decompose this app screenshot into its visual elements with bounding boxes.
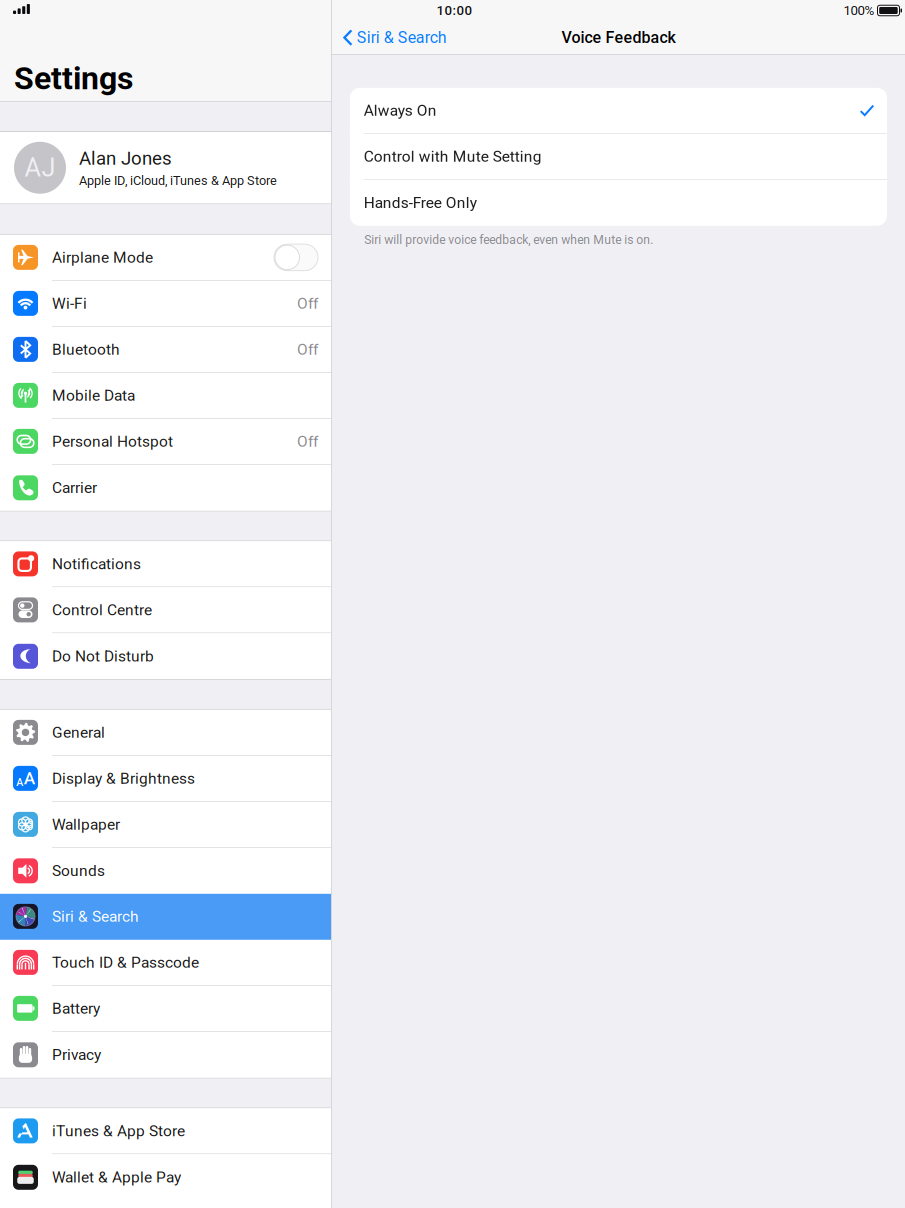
- staticText: Notifications: [52, 555, 141, 573]
- staticText: Apple ID, iCloud, iTunes & App Store: [79, 173, 277, 188]
- button[interactable]: Control Centre: [0, 587, 331, 633]
- staticText: Touch ID & Passcode: [52, 953, 199, 971]
- staticText: Control Centre: [52, 601, 152, 619]
- staticText: 10:00: [436, 3, 472, 18]
- staticText: Wi-Fi: [52, 294, 87, 312]
- staticText: Sounds: [52, 862, 105, 880]
- staticText: Voice Feedback: [561, 28, 675, 47]
- staticText: Off: [297, 340, 318, 358]
- staticText: Carrier: [52, 479, 97, 497]
- staticText: Always On: [364, 101, 437, 119]
- button[interactable]: Hands-Free Only: [350, 180, 887, 226]
- button[interactable]: Carrier: [0, 465, 331, 511]
- staticText: Personal Hotspot: [52, 432, 173, 450]
- button[interactable]: Bluetooth: [0, 327, 331, 373]
- button[interactable]: Mobile Data: [0, 373, 331, 419]
- staticText: Mobile Data: [52, 386, 135, 404]
- button[interactable]: Wallet & Apple Pay: [0, 1154, 331, 1200]
- staticText: iTunes & App Store: [52, 1122, 185, 1140]
- staticText: AJ: [24, 153, 55, 183]
- button[interactable]: Privacy: [0, 1032, 331, 1078]
- staticText: Privacy: [52, 1046, 101, 1064]
- button[interactable]: Always On: [350, 88, 887, 134]
- button[interactable]: Sounds: [0, 848, 331, 894]
- staticText: Bluetooth: [52, 340, 120, 358]
- button[interactable]: iTunes & App Store: [0, 1108, 331, 1154]
- staticText: General: [52, 723, 105, 741]
- staticText: Off: [297, 294, 318, 312]
- staticText: Siri & Search: [357, 28, 447, 47]
- button[interactable]: Do Not Disturb: [0, 633, 331, 679]
- staticText: Battery: [52, 999, 100, 1017]
- button[interactable]: Airplane Mode: [0, 235, 331, 281]
- staticText: Control with Mute Setting: [364, 147, 542, 165]
- staticText: Airplane Mode: [52, 248, 153, 266]
- staticText: Settings: [14, 59, 133, 97]
- button[interactable]: Wi-Fi: [0, 281, 331, 327]
- staticText: Hands-Free Only: [364, 194, 477, 212]
- button[interactable]: Personal Hotspot: [0, 419, 331, 465]
- button[interactable]: Siri & Search: [0, 894, 331, 940]
- staticText: Siri & Search: [52, 907, 139, 925]
- button[interactable]: Battery: [0, 986, 331, 1032]
- staticText: Alan Jones: [79, 147, 172, 169]
- staticText: Display & Brightness: [52, 769, 195, 787]
- staticText: Do Not Disturb: [52, 647, 154, 665]
- staticText: A: [24, 768, 35, 788]
- button[interactable]: Control with Mute Setting: [350, 134, 887, 180]
- button[interactable]: A: [0, 756, 331, 802]
- button[interactable]: AJ: [0, 132, 331, 203]
- button[interactable]: Wallpaper: [0, 802, 331, 848]
- button[interactable]: General: [0, 710, 331, 756]
- staticText: Wallet & Apple Pay: [52, 1168, 181, 1186]
- button[interactable]: Siri & Search: [332, 21, 457, 54]
- staticText: Siri will provide voice feedback, even w…: [364, 233, 653, 247]
- button[interactable]: Touch ID & Passcode: [0, 940, 331, 986]
- staticText: A: [16, 776, 23, 789]
- staticText: 100%: [843, 3, 874, 18]
- staticText: Wallpaper: [52, 815, 120, 833]
- staticText: Off: [297, 432, 318, 450]
- button[interactable]: Notifications: [0, 541, 331, 587]
